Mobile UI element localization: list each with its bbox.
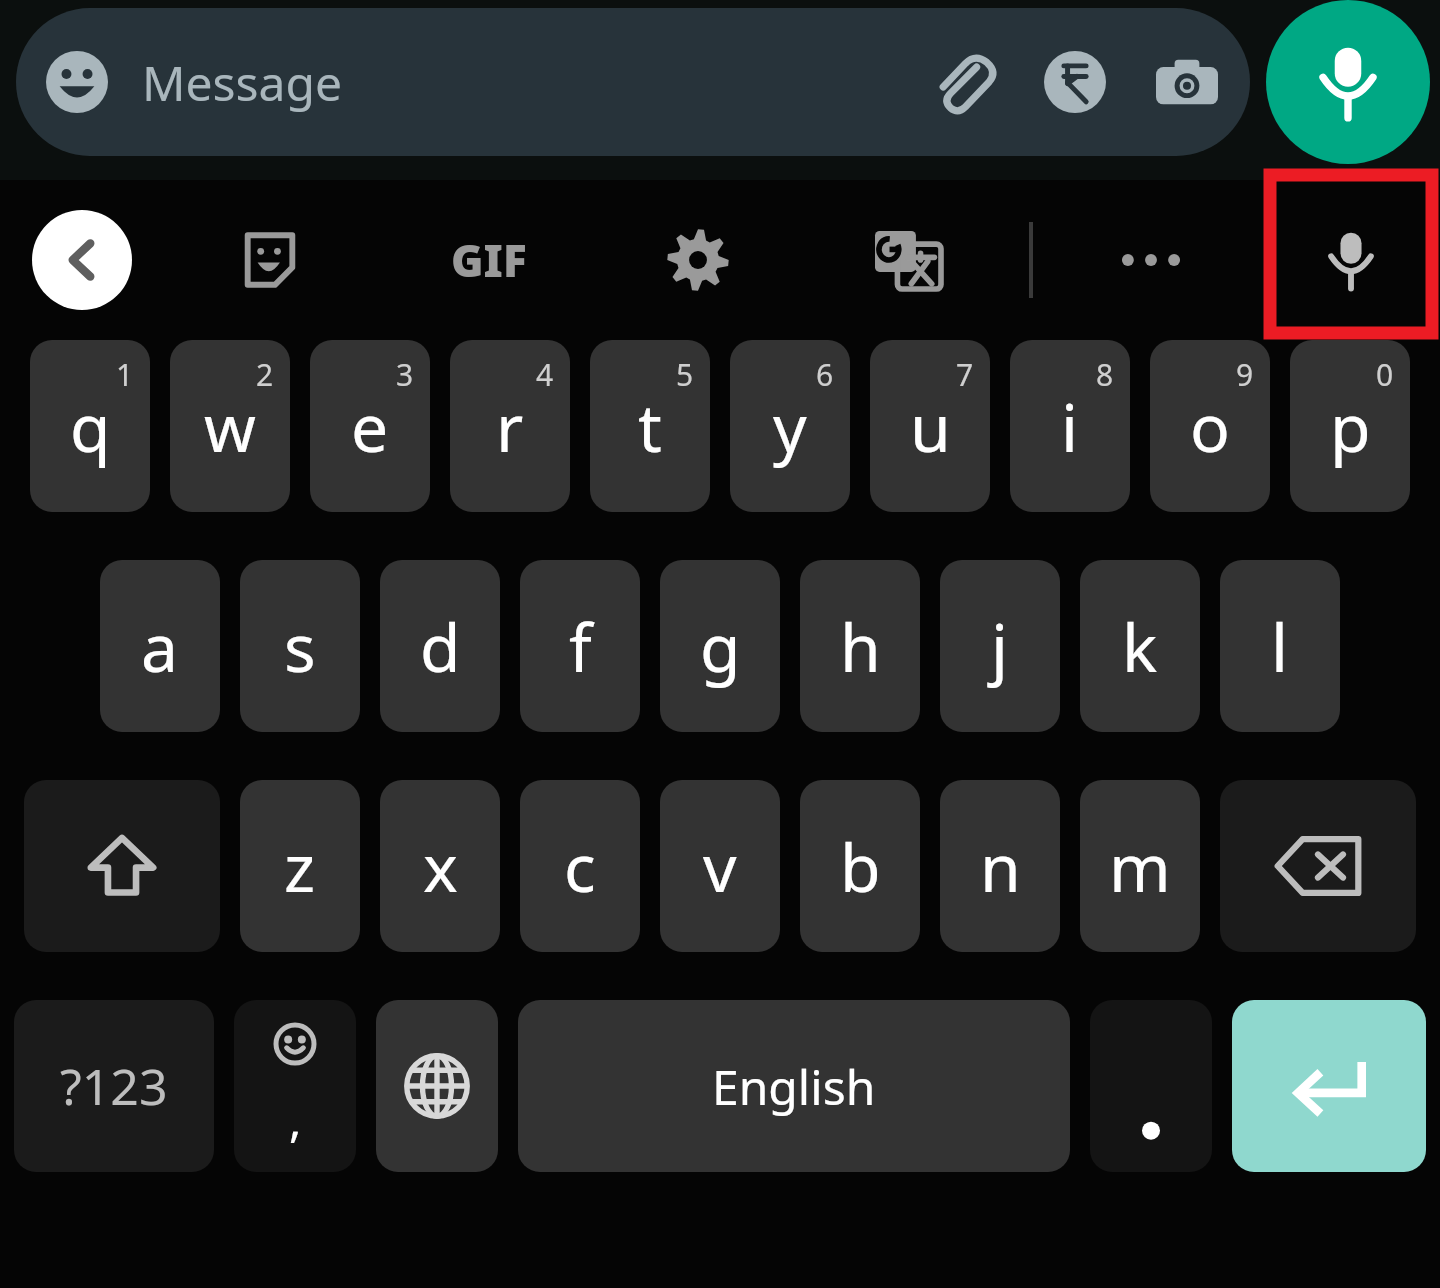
staticText: c	[564, 821, 596, 911]
staticText: 7	[956, 354, 974, 395]
staticText: ,	[289, 1088, 302, 1151]
button[interactable]: s	[240, 560, 360, 732]
button[interactable]: j	[940, 560, 1060, 732]
staticText: h	[840, 601, 881, 691]
button[interactable]: Enter	[1232, 1000, 1426, 1172]
button[interactable]: o	[1150, 340, 1270, 512]
staticText: x	[423, 821, 458, 911]
staticText: u	[910, 381, 951, 471]
button[interactable]: Attach	[930, 49, 996, 115]
staticText: n	[980, 821, 1021, 911]
button[interactable]: r	[450, 340, 570, 512]
button[interactable]: n	[940, 780, 1060, 952]
button[interactable]: Camera	[1154, 49, 1220, 115]
staticText: t	[638, 381, 662, 471]
button[interactable]: a	[100, 560, 220, 732]
staticText: w	[204, 381, 256, 471]
button[interactable]: d	[380, 560, 500, 732]
staticText: b	[840, 821, 881, 911]
button[interactable]: u	[870, 340, 990, 512]
button[interactable]: More options	[1105, 214, 1197, 306]
button[interactable]: v	[660, 780, 780, 952]
button[interactable]: Change language	[376, 1000, 498, 1172]
button[interactable]: c	[520, 780, 640, 952]
staticText: j	[991, 601, 1009, 691]
staticText: l	[1271, 601, 1289, 691]
button[interactable]: f	[520, 560, 640, 732]
staticText: a	[141, 601, 179, 691]
staticText: q	[70, 381, 111, 471]
staticText: 2	[256, 354, 274, 395]
button[interactable]: g	[660, 560, 780, 732]
button[interactable]: y	[730, 340, 850, 512]
staticText: s	[284, 601, 316, 691]
staticText: p	[1330, 381, 1371, 471]
button[interactable]: Stickers	[224, 214, 316, 306]
staticText: 3	[396, 354, 414, 395]
staticText: Message	[142, 50, 343, 115]
button[interactable]: k	[1080, 560, 1200, 732]
staticText: GIF	[451, 230, 527, 290]
button[interactable]: Voice message	[1266, 0, 1430, 164]
button[interactable]: b	[800, 780, 920, 952]
staticText: 6	[816, 354, 834, 395]
staticText: 0	[1376, 354, 1394, 395]
button[interactable]: e	[310, 340, 430, 512]
staticText: 8	[1096, 354, 1114, 395]
staticText: 4	[536, 354, 554, 395]
button[interactable]: m	[1080, 780, 1200, 952]
button[interactable]: Comma and emoji	[234, 1000, 356, 1172]
staticText: r	[496, 381, 524, 471]
staticText: d	[420, 601, 461, 691]
staticText: m	[1109, 821, 1171, 911]
button[interactable]: z	[240, 780, 360, 952]
button[interactable]: Backspace	[1220, 780, 1416, 952]
staticText: i	[1061, 381, 1079, 471]
staticText: English	[712, 1054, 876, 1119]
button[interactable]: x	[380, 780, 500, 952]
button[interactable]: h	[800, 560, 920, 732]
staticText: ?123	[60, 1052, 168, 1120]
button[interactable]: q	[30, 340, 150, 512]
button[interactable]: GIF	[434, 205, 544, 315]
staticText: 9	[1236, 354, 1254, 395]
button[interactable]: Translate	[862, 214, 954, 306]
button[interactable]: Emoji	[16, 8, 1250, 156]
button[interactable]: English	[518, 1000, 1070, 1172]
button[interactable]: l	[1220, 560, 1340, 732]
staticText: k	[1122, 601, 1158, 691]
staticText: f	[569, 601, 592, 691]
staticText: y	[773, 381, 807, 471]
staticText: v	[703, 821, 737, 911]
button[interactable]: t	[590, 340, 710, 512]
staticText: z	[284, 821, 316, 911]
button[interactable]: ?123	[14, 1000, 214, 1172]
staticText: 1	[116, 354, 134, 395]
staticText: e	[351, 381, 389, 471]
staticText: 5	[676, 354, 694, 395]
button[interactable]: Back	[32, 210, 132, 310]
button[interactable]: Shift	[24, 780, 220, 952]
button[interactable]: Voice input	[1272, 181, 1430, 339]
button[interactable]: Payment	[1042, 49, 1108, 115]
button[interactable]: Settings	[652, 214, 744, 306]
staticText: g	[700, 601, 741, 691]
button[interactable]: Emoji	[46, 51, 108, 113]
staticText: o	[1190, 381, 1230, 471]
button[interactable]: i	[1010, 340, 1130, 512]
button[interactable]	[1090, 1000, 1212, 1172]
button[interactable]: p	[1290, 340, 1410, 512]
button[interactable]: w	[170, 340, 290, 512]
